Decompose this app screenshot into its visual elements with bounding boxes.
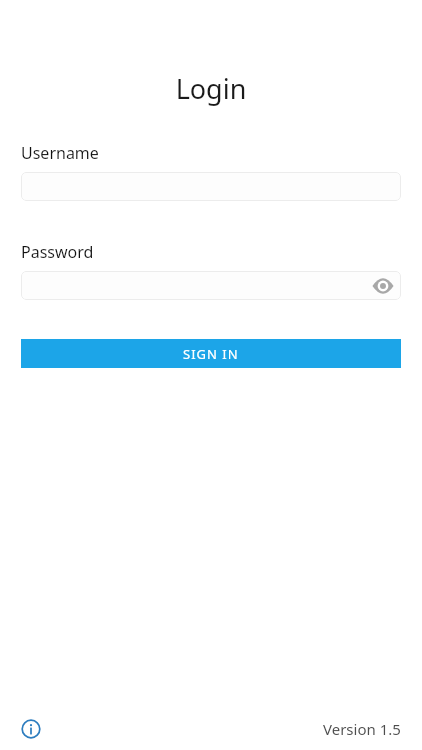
staticText: Username [21, 142, 99, 164]
button[interactable]: Show password [372, 275, 394, 297]
staticText: Version 1.5 [323, 719, 401, 739]
button[interactable]: SIGN IN [21, 339, 401, 368]
staticText: Login [0, 70, 422, 107]
button[interactable]: Show password [21, 271, 401, 300]
button[interactable]: Information [21, 719, 41, 739]
button[interactable] [21, 172, 401, 201]
staticText: Password [21, 241, 94, 263]
staticText: SIGN IN [183, 345, 239, 363]
